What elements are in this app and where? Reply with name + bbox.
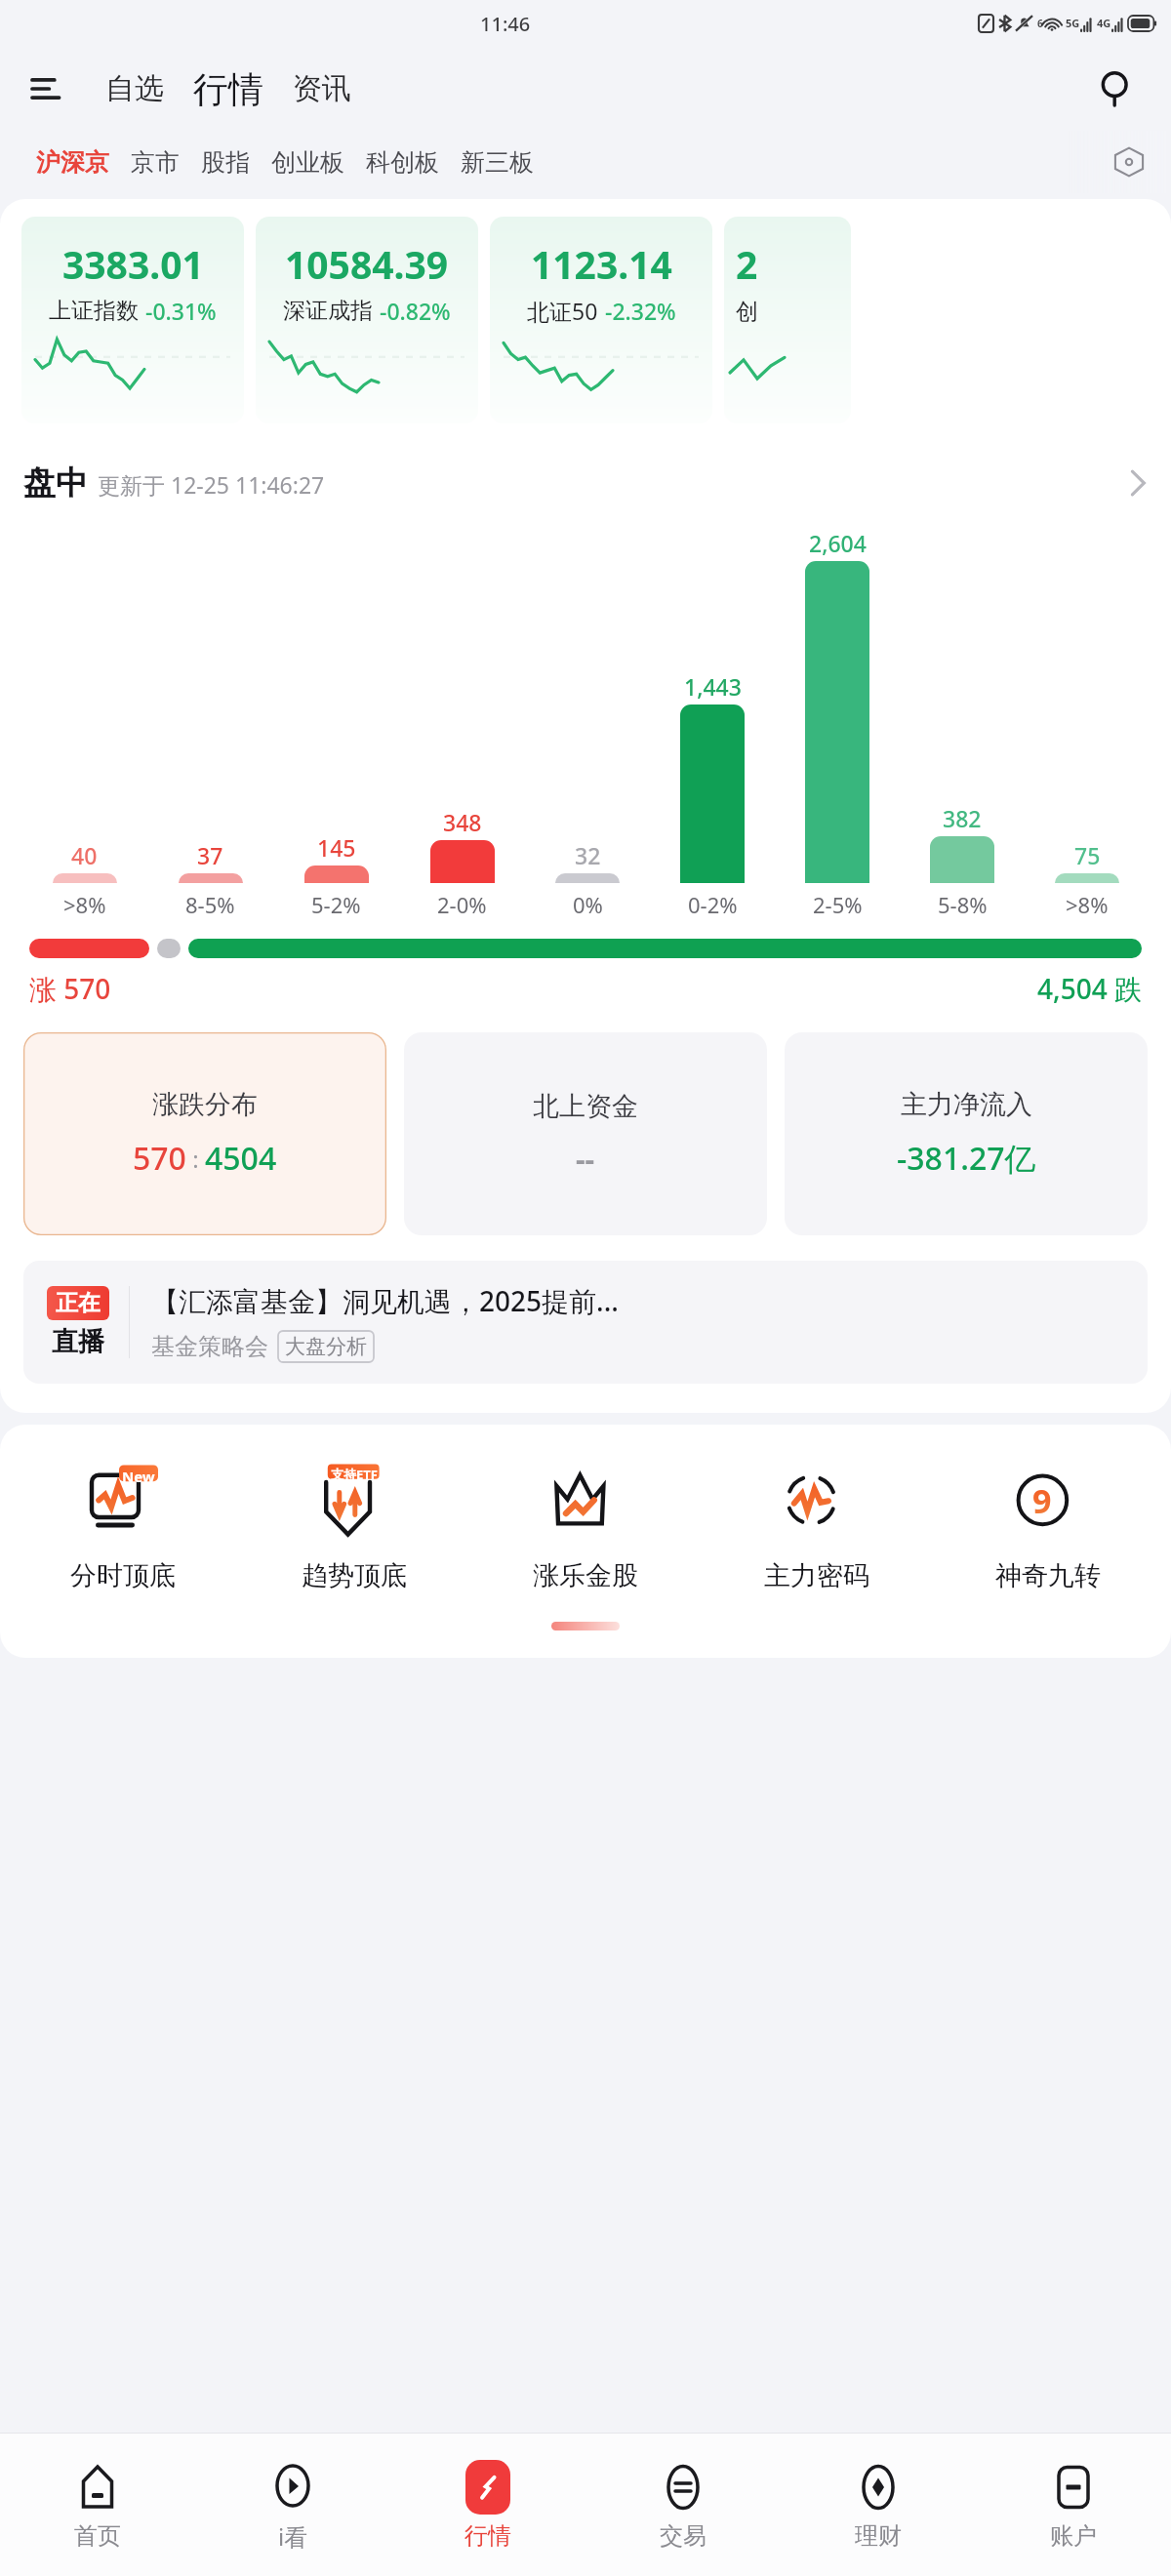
- staticText: 1,443: [684, 671, 742, 702]
- staticText: 4,504 跌: [1037, 970, 1142, 1007]
- staticText: 上证指数: [49, 297, 139, 325]
- staticText: 主力净流入: [901, 1088, 1032, 1121]
- staticText: 2,604: [809, 528, 867, 558]
- button[interactable]: 10584.39: [256, 217, 478, 423]
- staticText: 行情: [464, 2521, 511, 2551]
- staticText: 3383.01: [62, 238, 204, 290]
- button[interactable]: More boards: [1103, 136, 1155, 188]
- button[interactable]: i看: [195, 2434, 390, 2576]
- staticText: -0.82%: [380, 296, 451, 326]
- staticText: 4G: [1097, 16, 1111, 30]
- button[interactable]: 京市: [120, 141, 190, 184]
- staticText: 神奇九转: [995, 1559, 1101, 1592]
- staticText: 支持ETF: [331, 1466, 378, 1483]
- staticText: 涨乐金股: [533, 1559, 638, 1592]
- staticText: 10584.39: [285, 238, 449, 290]
- staticText: 2-5%: [813, 890, 863, 919]
- staticText: 京市: [131, 147, 180, 178]
- button[interactable]: 北上资金: [404, 1032, 767, 1235]
- staticText: 32: [575, 840, 601, 870]
- staticText: 自选: [105, 70, 164, 107]
- staticText: 9: [1032, 1478, 1052, 1523]
- staticText: 40: [71, 840, 98, 870]
- staticText: >8%: [63, 890, 106, 919]
- staticText: -2.32%: [605, 296, 676, 326]
- staticText: 北上资金: [533, 1090, 638, 1123]
- button[interactable]: 涨跌分布: [23, 1032, 386, 1235]
- staticText: 【汇添富基金】洞见机遇，2025提前...: [151, 1282, 619, 1319]
- staticText: 账户: [1050, 2521, 1097, 2551]
- button[interactable]: 首页: [0, 2434, 195, 2576]
- staticText: 股指: [201, 147, 250, 178]
- staticText: 11:46: [480, 11, 531, 37]
- staticText: 348: [443, 807, 482, 837]
- button[interactable]: 主力净流入: [785, 1032, 1148, 1235]
- staticText: 1123.14: [531, 238, 672, 290]
- button[interactable]: 创业板: [261, 141, 355, 184]
- staticText: 正在: [56, 1289, 101, 1317]
- staticText: 5-8%: [938, 890, 988, 919]
- button[interactable]: Search: [1087, 60, 1146, 118]
- button[interactable]: 2: [724, 217, 851, 423]
- staticText: 涨跌分布: [152, 1088, 258, 1121]
- button[interactable]: Menu: [20, 61, 74, 116]
- staticText: --: [576, 1139, 595, 1179]
- button[interactable]: 3383.01: [21, 217, 244, 423]
- staticText: 涨 570: [29, 970, 111, 1007]
- staticText: 北证50: [527, 296, 598, 326]
- staticText: 资讯: [293, 70, 351, 107]
- staticText: i看: [278, 2520, 308, 2553]
- button[interactable]: 科创板: [355, 141, 450, 184]
- staticText: 基金策略会: [151, 1332, 268, 1361]
- staticText: 4504: [205, 1137, 277, 1180]
- button[interactable]: 主力密码: [701, 1456, 932, 1596]
- button[interactable]: 9: [932, 1456, 1163, 1596]
- staticText: -381.27亿: [897, 1137, 1036, 1180]
- button[interactable]: 盘中: [0, 459, 1171, 507]
- staticText: 沪深京: [36, 147, 109, 178]
- staticText: New: [122, 1467, 155, 1486]
- staticText: 0-2%: [688, 890, 738, 919]
- button[interactable]: 1123.14: [490, 217, 712, 423]
- staticText: 行情: [193, 67, 263, 111]
- staticText: 更新于 12-25 11:46:27: [98, 469, 325, 500]
- staticText: 6: [1037, 17, 1043, 30]
- staticText: 创业板: [271, 147, 344, 178]
- button[interactable]: New: [8, 1456, 238, 1596]
- button[interactable]: 正在: [23, 1261, 1148, 1384]
- button[interactable]: 股指: [190, 141, 261, 184]
- staticText: 145: [317, 832, 356, 863]
- button[interactable]: 交易: [585, 2434, 781, 2576]
- staticText: 382: [943, 803, 982, 833]
- staticText: 新三板: [461, 147, 534, 178]
- staticText: 37: [197, 840, 223, 870]
- staticText: 主力密码: [764, 1559, 869, 1592]
- staticText: 创: [736, 298, 758, 326]
- staticText: 趋势顶底: [302, 1559, 407, 1592]
- button[interactable]: 行情: [390, 2434, 585, 2576]
- staticText: 570: [133, 1137, 186, 1180]
- staticText: 5G: [1066, 16, 1080, 30]
- staticText: >8%: [1066, 890, 1109, 919]
- staticText: 5-2%: [311, 890, 361, 919]
- staticText: 分时顶底: [70, 1559, 176, 1592]
- button[interactable]: 行情: [185, 61, 271, 117]
- staticText: 2: [736, 238, 758, 290]
- staticText: 8-5%: [185, 890, 235, 919]
- button[interactable]: 沪深京: [25, 141, 120, 184]
- staticText: 直播: [52, 1325, 104, 1358]
- button[interactable]: 自选: [94, 60, 176, 117]
- other: Open market details: [1128, 466, 1148, 500]
- button[interactable]: 账户: [976, 2434, 1171, 2576]
- staticText: 0%: [573, 890, 603, 919]
- staticText: :: [186, 1143, 205, 1175]
- button[interactable]: 支持ETF: [238, 1456, 469, 1596]
- button[interactable]: 理财: [781, 2434, 976, 2576]
- button[interactable]: 资讯: [281, 60, 363, 117]
- staticText: 盘中: [23, 463, 88, 503]
- staticText: 理财: [855, 2521, 902, 2551]
- button[interactable]: 涨乐金股: [469, 1456, 701, 1596]
- button[interactable]: 新三板: [450, 141, 545, 184]
- staticText: -0.31%: [145, 296, 217, 326]
- staticText: 75: [1074, 840, 1101, 870]
